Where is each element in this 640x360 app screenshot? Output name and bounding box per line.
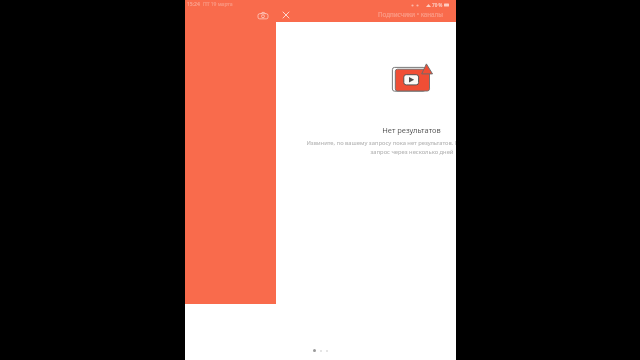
staticText: Подписчики • каналы <box>378 10 443 18</box>
staticText: ПТ 19 марта <box>203 1 233 8</box>
button[interactable]: Close search <box>277 8 294 22</box>
button[interactable] <box>313 349 316 352</box>
button[interactable]: Search with camera <box>253 8 272 22</box>
staticText: 70 % <box>432 2 443 8</box>
button[interactable]: Подписчики • каналы <box>378 10 443 18</box>
staticText: Нет результатов <box>382 125 441 135</box>
staticText: 15:24 <box>187 1 200 8</box>
staticText: Извините, по вашему запросу пока нет рез… <box>306 139 456 155</box>
